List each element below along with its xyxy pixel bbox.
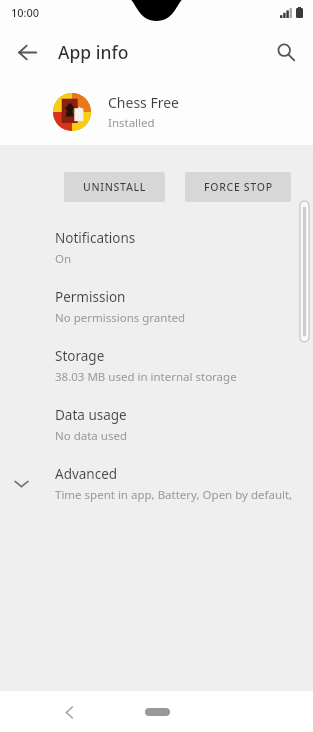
staticText: Notifications	[55, 229, 136, 247]
staticText: Time spent in app, Battery, Open by defa…	[55, 487, 297, 503]
button[interactable]: FORCE STOP	[185, 172, 291, 202]
button[interactable]: UNINSTALL	[64, 172, 165, 202]
button[interactable]: Advanced	[0, 454, 313, 513]
button[interactable]: Storage	[0, 336, 313, 395]
button[interactable]: Home	[134, 701, 180, 723]
staticText: No permissions granted	[55, 310, 186, 326]
staticText: Installed	[108, 115, 155, 131]
staticText: App info	[58, 40, 129, 64]
staticText: Data usage	[55, 406, 127, 424]
staticText: Advanced	[55, 465, 118, 483]
staticText: 10:00	[11, 5, 40, 20]
button[interactable]: Permission	[0, 277, 313, 336]
staticText: No data used	[55, 428, 127, 444]
button[interactable]: Notifications	[0, 218, 313, 277]
staticText: Chess Free	[108, 93, 180, 112]
button[interactable]: Search	[264, 30, 308, 74]
staticText: On	[55, 251, 72, 267]
button[interactable]: Back	[52, 695, 86, 729]
staticText: Storage	[55, 347, 105, 365]
button[interactable]: Chess Free	[0, 82, 313, 142]
staticText: Permission	[55, 288, 126, 306]
staticText: UNINSTALL	[83, 180, 147, 194]
staticText: FORCE STOP	[204, 180, 273, 194]
staticText: 38.03 MB used in internal storage	[55, 369, 237, 385]
button[interactable]: Data usage	[0, 395, 313, 454]
button[interactable]: Navigate up	[5, 30, 49, 74]
